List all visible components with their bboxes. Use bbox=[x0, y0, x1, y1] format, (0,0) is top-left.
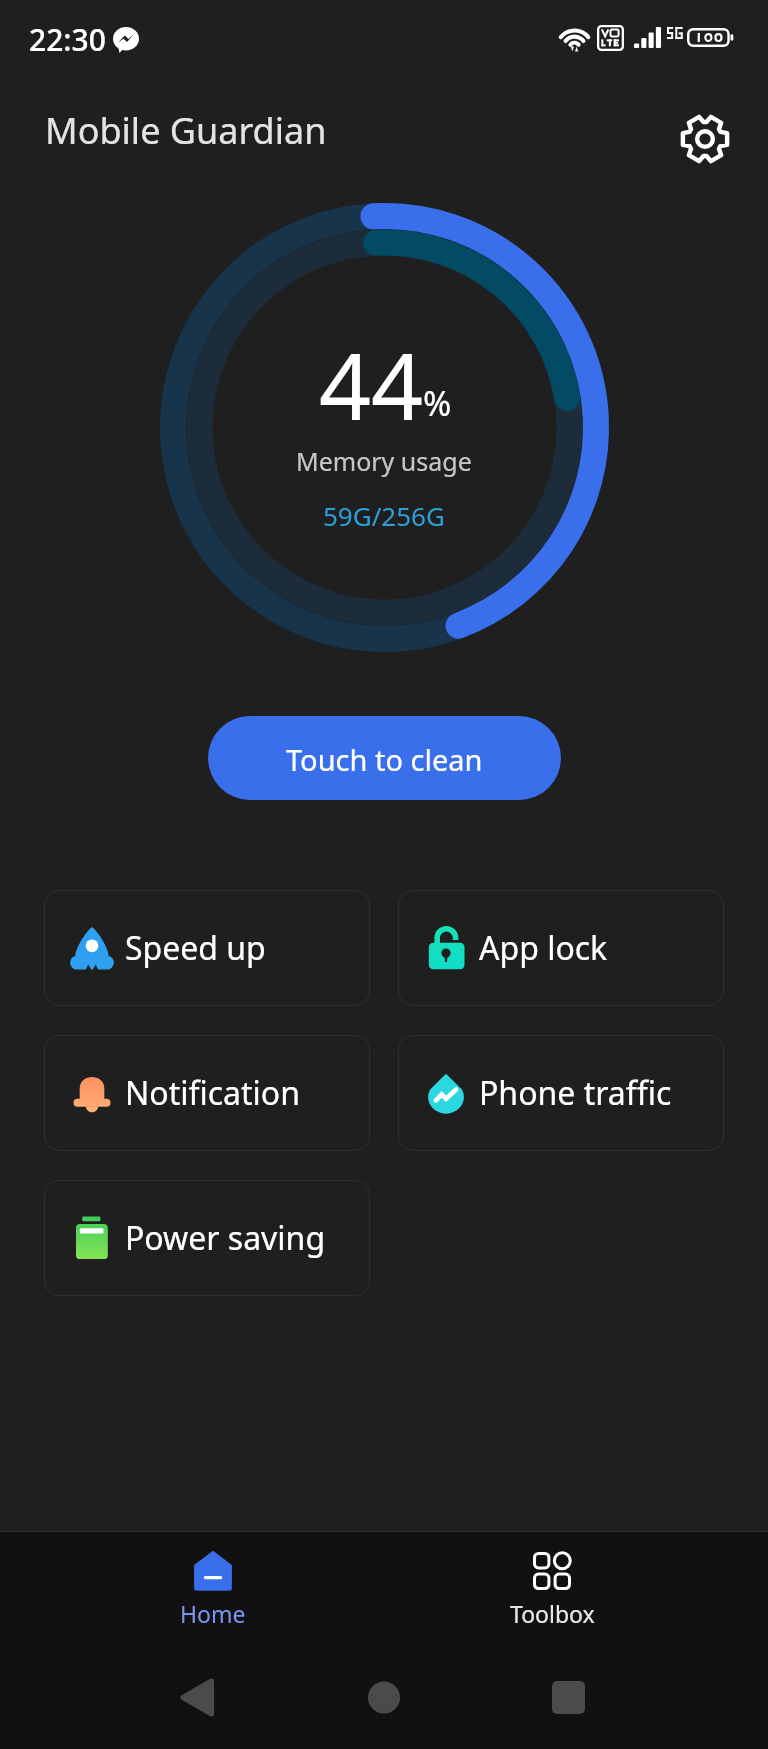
button[interactable]: App lock bbox=[398, 890, 724, 1006]
button[interactable]: Toolbox bbox=[384, 1532, 768, 1648]
button[interactable]: Settings bbox=[672, 106, 737, 171]
button[interactable]: Home bbox=[0, 1532, 384, 1648]
button[interactable]: Touch to clean bbox=[208, 716, 561, 800]
staticText: % bbox=[423, 380, 452, 426]
staticText: Toolbox bbox=[510, 1598, 595, 1629]
staticText: 22:30 bbox=[29, 19, 106, 60]
staticText: 44 bbox=[319, 323, 424, 447]
button[interactable]: Speed up bbox=[44, 890, 370, 1006]
button[interactable]: Notification bbox=[44, 1035, 370, 1151]
button[interactable]: Power saving bbox=[44, 1180, 370, 1296]
staticText: Mobile Guardian bbox=[45, 106, 327, 155]
staticText: Notification bbox=[125, 1071, 301, 1115]
staticText: Power saving bbox=[125, 1216, 326, 1260]
staticText: 59G/256G bbox=[323, 498, 445, 533]
staticText: Phone traffic bbox=[479, 1071, 672, 1115]
staticText: Touch to clean bbox=[286, 740, 483, 779]
staticText: Speed up bbox=[125, 926, 266, 970]
staticText: Memory usage bbox=[296, 444, 472, 478]
staticText: Home bbox=[180, 1598, 246, 1629]
button[interactable]: Phone traffic bbox=[398, 1035, 724, 1151]
staticText: App lock bbox=[479, 926, 608, 970]
